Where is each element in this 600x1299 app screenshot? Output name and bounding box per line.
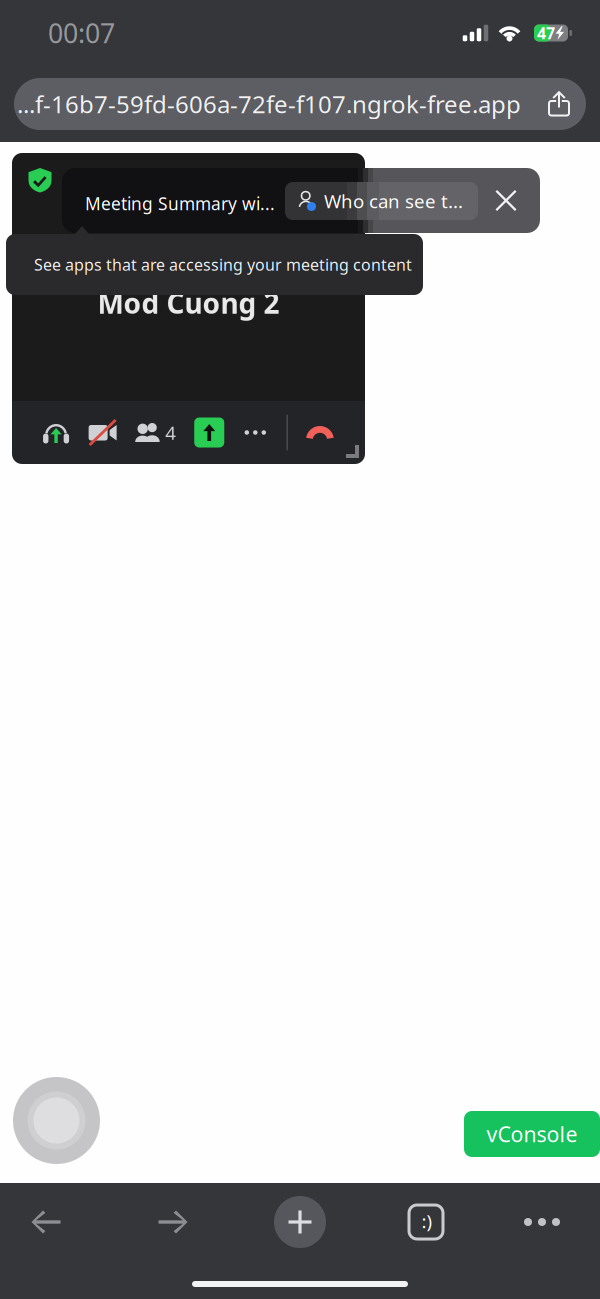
button[interactable]: Turn camera on xyxy=(88,419,117,446)
button[interactable]: vConsole xyxy=(464,1111,600,1157)
button[interactable]: ...f-16b7-59fd-606a-72fe-f107.ngrok-free… xyxy=(14,78,586,130)
staticText: Who can see t... xyxy=(324,189,463,213)
button[interactable]: Share screen xyxy=(194,417,224,447)
staticText: 00:07 xyxy=(48,15,115,51)
staticText: See apps that are accessing your meeting… xyxy=(34,254,412,275)
staticText: ...f-16b7-59fd-606a-72fe-f107.ngrok-free… xyxy=(17,88,521,120)
button[interactable]: Audio settings xyxy=(42,420,70,445)
button[interactable]: More options xyxy=(242,419,268,445)
button[interactable]: Close xyxy=(478,168,534,233)
button[interactable]: Back xyxy=(0,1185,92,1259)
button[interactable]: Leave meeting xyxy=(306,424,335,440)
button[interactable]: Forward xyxy=(127,1185,219,1259)
staticText: Meeting Summary wi... xyxy=(85,192,275,215)
staticText: Mod Cuong 2 xyxy=(97,284,279,322)
button[interactable]: Emoji xyxy=(380,1185,472,1259)
staticText: 4 xyxy=(165,420,176,445)
staticText: :) xyxy=(421,1209,432,1233)
staticText: 47 xyxy=(537,22,555,44)
button[interactable]: 4 xyxy=(135,420,176,445)
button[interactable]: New tab xyxy=(254,1185,346,1259)
button[interactable]: AssistiveTouch xyxy=(13,1077,100,1164)
button[interactable]: More xyxy=(496,1185,588,1259)
button[interactable]: Who can see t... xyxy=(285,182,478,220)
staticText: vConsole xyxy=(486,1120,577,1148)
